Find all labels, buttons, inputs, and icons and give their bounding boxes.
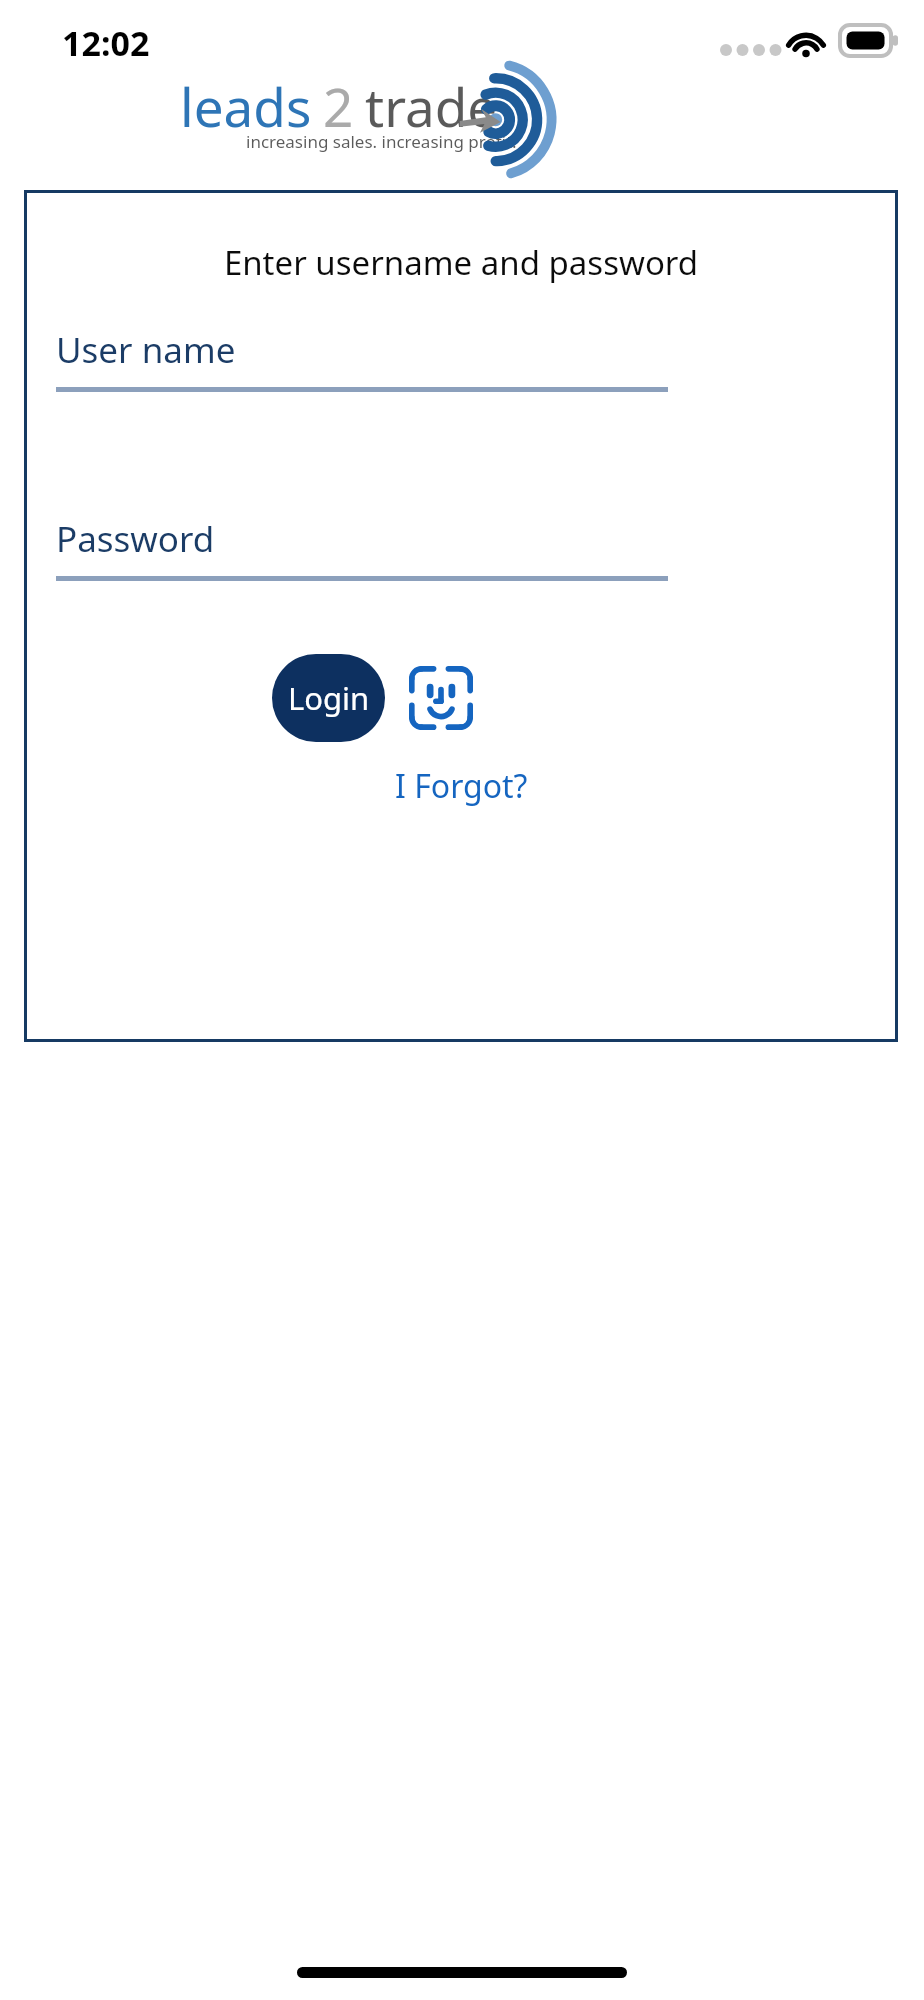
staticText: 2 [323,70,354,142]
staticText: leads [180,70,312,142]
button[interactable]: Password [56,515,668,581]
staticText: trade [365,70,498,142]
button[interactable]: Log in with Face ID [407,664,475,732]
button[interactable]: Login [272,654,385,742]
staticText: increasing sales. increasing profit. [246,130,517,153]
button[interactable]: User name [56,326,668,392]
staticText: Login [288,677,370,719]
staticText: I Forgot? [395,764,528,808]
staticText: Enter username and password [24,240,898,285]
staticText: User name [56,326,236,374]
button[interactable]: I Forgot? [381,758,542,814]
staticText: 12:02 [62,20,150,66]
staticText: Password [56,515,215,563]
